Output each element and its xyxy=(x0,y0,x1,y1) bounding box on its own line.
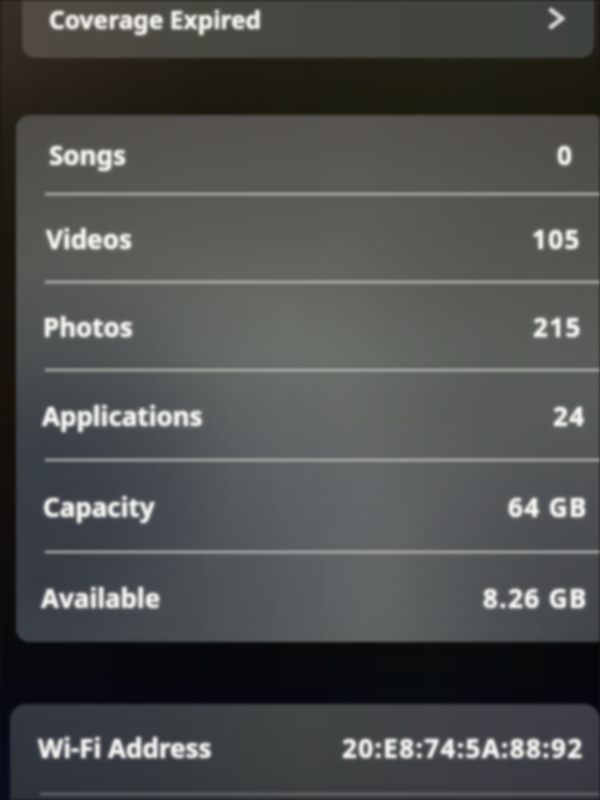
staticText: Photos xyxy=(43,309,133,344)
button[interactable]: Coverage Expired xyxy=(22,0,594,58)
staticText: Songs xyxy=(49,137,126,172)
staticText: Applications xyxy=(42,398,203,433)
staticText: Wi-Fi Address xyxy=(38,730,212,765)
staticText: 105 xyxy=(532,221,581,256)
button[interactable]: Songs xyxy=(16,115,600,194)
staticText: 24 xyxy=(553,398,586,433)
staticText: Available xyxy=(41,580,161,615)
staticText: Photos xyxy=(43,309,133,344)
staticText: Coverage Expired xyxy=(49,3,262,36)
staticText: 8.26 GB xyxy=(483,580,588,615)
staticText: Videos xyxy=(46,221,132,256)
staticText: Videos xyxy=(46,221,132,256)
staticText: 215 xyxy=(533,309,582,344)
staticText: Capacity xyxy=(43,489,155,524)
other: Coverage details xyxy=(549,8,564,29)
staticText: 8.26 GB xyxy=(483,580,588,615)
staticText: 64 GB xyxy=(508,489,588,524)
staticText: 64 GB xyxy=(508,489,588,524)
staticText: 0 xyxy=(557,137,574,172)
staticText: 20:E8:74:5A:88:92 xyxy=(342,730,584,765)
button[interactable]: Videos xyxy=(16,194,600,283)
staticText: Songs xyxy=(49,137,126,172)
staticText: 24 xyxy=(553,398,586,433)
button[interactable]: Photos xyxy=(16,282,600,370)
staticText: Wi-Fi Address xyxy=(38,730,212,765)
staticText: 0 xyxy=(557,137,574,172)
staticText: Available xyxy=(41,580,161,615)
staticText: 20:E8:74:5A:88:92 xyxy=(342,730,584,765)
button[interactable]: Applications xyxy=(16,370,600,460)
staticText: Capacity xyxy=(43,489,155,524)
staticText: Coverage Expired xyxy=(49,3,262,36)
staticText: 215 xyxy=(533,309,582,344)
button[interactable]: Wi-Fi Address xyxy=(10,704,600,791)
button[interactable]: Capacity xyxy=(16,460,600,552)
staticText: 105 xyxy=(532,221,581,256)
staticText: Applications xyxy=(42,398,203,433)
button[interactable]: Available xyxy=(16,552,600,642)
